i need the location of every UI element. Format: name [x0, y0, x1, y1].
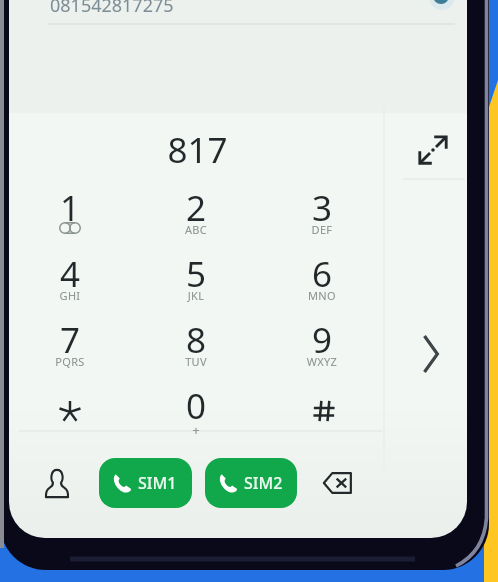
button[interactable]: Contacts — [35, 458, 79, 508]
staticText: 081542817275 — [50, 0, 174, 18]
button[interactable]: 9 — [268, 312, 376, 372]
button[interactable]: Contact avatar — [429, 0, 455, 10]
button[interactable]: 7 — [16, 312, 124, 372]
button[interactable]: 0 — [142, 378, 250, 438]
button[interactable]: 2 — [142, 180, 250, 240]
staticText: MNO — [268, 288, 376, 303]
staticText: 5 — [142, 250, 250, 298]
staticText: DEF — [268, 222, 376, 237]
button[interactable]: 1 — [16, 180, 124, 240]
staticText: ABC — [142, 222, 250, 237]
button[interactable]: SIM2 — [205, 458, 297, 508]
staticText: + — [142, 421, 250, 439]
staticText: 9 — [268, 316, 376, 364]
staticText: 1 — [16, 184, 124, 232]
button[interactable]: 3 — [268, 180, 376, 240]
button[interactable]: SIM1 — [99, 458, 192, 508]
staticText: SIM2 — [244, 472, 283, 494]
staticText: 6 — [268, 250, 376, 298]
staticText: PQRS — [16, 354, 124, 369]
staticText: 8 — [142, 316, 250, 364]
staticText: 3 — [268, 184, 376, 232]
staticText: SIM1 — [138, 472, 177, 494]
button[interactable]: Backspace — [315, 458, 359, 508]
button[interactable]: 8 — [142, 312, 250, 372]
button[interactable]: 5 — [142, 246, 250, 306]
staticText: 0 — [142, 382, 250, 430]
staticText: 2 — [142, 184, 250, 232]
staticText: GHI — [16, 288, 124, 303]
staticText: 817 — [9, 126, 386, 174]
button[interactable] — [16, 378, 124, 438]
staticText: TUV — [142, 354, 250, 369]
staticText: WXYZ — [268, 354, 376, 369]
button[interactable]: 4 — [16, 246, 124, 306]
staticText: 7 — [16, 316, 124, 364]
button[interactable] — [268, 378, 376, 438]
staticText: JKL — [142, 288, 250, 303]
staticText: 4 — [16, 250, 124, 298]
button[interactable]: 6 — [268, 246, 376, 306]
button[interactable]: Next — [403, 326, 459, 382]
button[interactable]: Expand — [409, 126, 457, 174]
